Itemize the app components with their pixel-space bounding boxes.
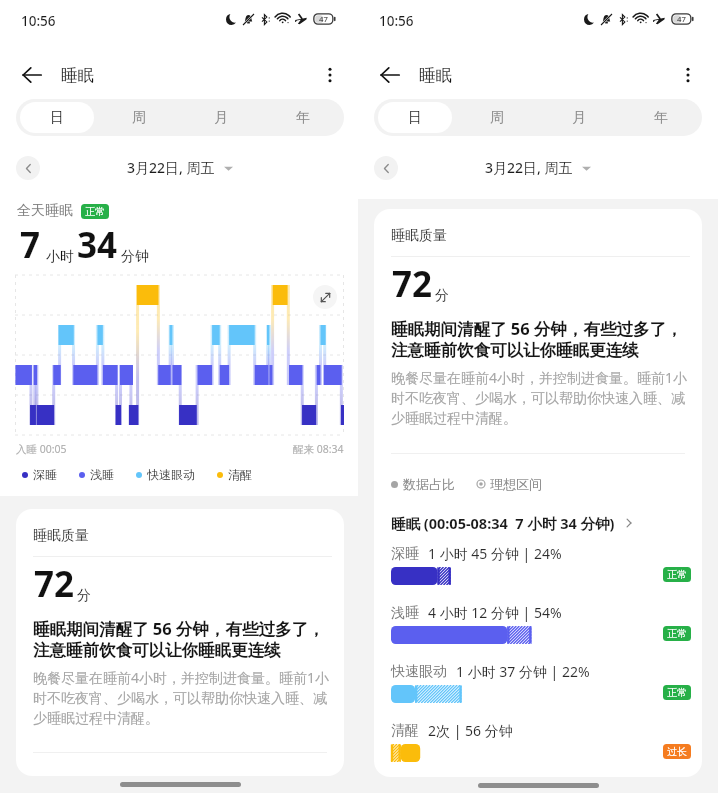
staticText: 浅睡 <box>391 604 419 622</box>
staticText: 日 <box>50 109 64 127</box>
button[interactable]: Back <box>370 55 410 95</box>
staticText: 过长 <box>667 745 687 758</box>
staticText: 正常 <box>667 627 687 640</box>
staticText: 正常 <box>85 205 105 218</box>
staticText: 入睡 00:05 <box>16 442 67 456</box>
button[interactable]: 月 <box>538 102 620 133</box>
staticText: 睡眠 (00:05-08:34 7 小时 34 分钟) <box>391 513 615 533</box>
button[interactable]: 日 <box>378 102 452 133</box>
staticText: 清醒 <box>228 467 252 482</box>
staticText: 分钟 <box>121 248 149 266</box>
staticText: 快速眼动 <box>391 663 447 681</box>
staticText: 72 <box>392 260 433 308</box>
button[interactable]: Back <box>12 55 52 95</box>
staticText: 7 <box>20 221 41 269</box>
staticText: 周 <box>490 109 504 127</box>
button[interactable]: Previous day <box>374 156 398 180</box>
button[interactable]: More options <box>668 55 708 95</box>
staticText: 34 <box>77 221 118 269</box>
button[interactable]: Expand chart <box>313 285 337 309</box>
button[interactable]: 年 <box>262 102 344 133</box>
staticText: 47 <box>677 14 686 25</box>
staticText: 浅睡 <box>90 467 114 482</box>
staticText: 分 <box>435 287 449 305</box>
button[interactable]: 睡眠 (00:05-08:34 7 小时 34 分钟) <box>391 513 688 533</box>
staticText: 醒来 08:34 <box>293 442 344 456</box>
button[interactable]: Previous day <box>16 156 40 180</box>
button[interactable]: More options <box>310 55 350 95</box>
staticText: 数据占比 <box>403 476 455 492</box>
staticText: 月 <box>214 109 228 127</box>
staticText: 2次 | 56 分钟 <box>428 721 513 740</box>
staticText: 年 <box>296 109 310 127</box>
staticText: 分 <box>77 587 91 605</box>
staticText: 晚餐尽量在睡前4小时，并控制进食量。睡前1小时不吃夜宵、少喝水，可以帮助你快速入… <box>391 368 690 427</box>
staticText: 睡眠质量 <box>33 527 89 545</box>
staticText: 睡眠期间清醒了 56 分钟，有些过多了，注意睡前饮食可以让你睡眠更连续 <box>391 317 690 361</box>
staticText: 10:56 <box>379 12 414 30</box>
staticText: 小时 <box>46 248 74 266</box>
staticText: 3月22日, 周五 <box>485 158 573 177</box>
staticText: 睡眠质量 <box>391 227 447 245</box>
button[interactable]: 周 <box>98 102 180 133</box>
staticText: 47 <box>319 14 328 25</box>
staticText: 72 <box>34 560 75 608</box>
staticText: 睡眠期间清醒了 56 分钟，有些过多了，注意睡前饮食可以让你睡眠更连续 <box>33 617 332 661</box>
button[interactable]: 月 <box>180 102 262 133</box>
staticText: 4 小时 12 分钟 | 54% <box>428 603 562 622</box>
staticText: 年 <box>654 109 668 127</box>
button[interactable]: 日 <box>20 102 94 133</box>
staticText: 3月22日, 周五 <box>127 158 215 177</box>
staticText: 1 小时 45 分钟 | 24% <box>428 544 562 563</box>
staticText: 全天睡眠 <box>17 202 73 220</box>
staticText: 月 <box>572 109 586 127</box>
staticText: 10:56 <box>21 12 56 30</box>
staticText: 周 <box>132 109 146 127</box>
staticText: 日 <box>408 109 422 127</box>
staticText: 深睡 <box>33 467 57 482</box>
staticText: 深睡 <box>391 545 419 563</box>
staticText: 理想区间 <box>490 476 542 492</box>
staticText: 睡眠 <box>419 65 452 86</box>
staticText: 正常 <box>667 568 687 581</box>
staticText: 快速眼动 <box>147 467 195 482</box>
staticText: 1 小时 37 分钟 | 22% <box>456 662 590 681</box>
staticText: 清醒 <box>391 722 419 740</box>
staticText: 睡眠 <box>61 65 94 86</box>
button[interactable]: 年 <box>620 102 702 133</box>
staticText: 正常 <box>667 686 687 699</box>
button[interactable]: 3月22日, 周五 <box>485 158 591 177</box>
staticText: 晚餐尽量在睡前4小时，并控制进食量。睡前1小时不吃夜宵、少喝水，可以帮助你快速入… <box>33 668 332 727</box>
button[interactable]: 周 <box>456 102 538 133</box>
button[interactable]: 3月22日, 周五 <box>127 158 233 177</box>
